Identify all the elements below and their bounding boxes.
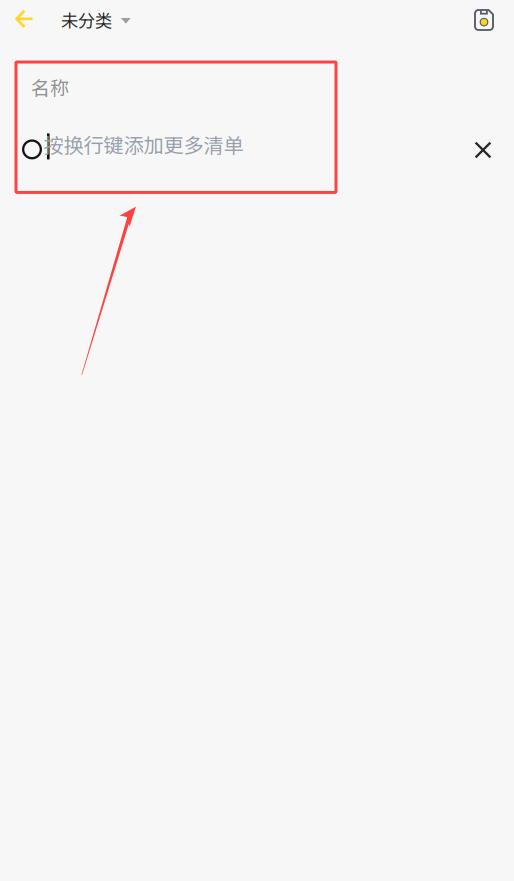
button[interactable]: 未分类: [61, 1, 131, 37]
button[interactable]: 名称: [16, 62, 336, 192]
staticText: 名称: [31, 73, 69, 100]
button[interactable]: Back: [0, 1, 47, 37]
button[interactable]: Close: [461, 128, 505, 172]
staticText: 未分类: [61, 7, 112, 33]
button[interactable]: Save: [466, 0, 502, 38]
staticText: 按换行键添加更多清单: [43, 129, 243, 159]
